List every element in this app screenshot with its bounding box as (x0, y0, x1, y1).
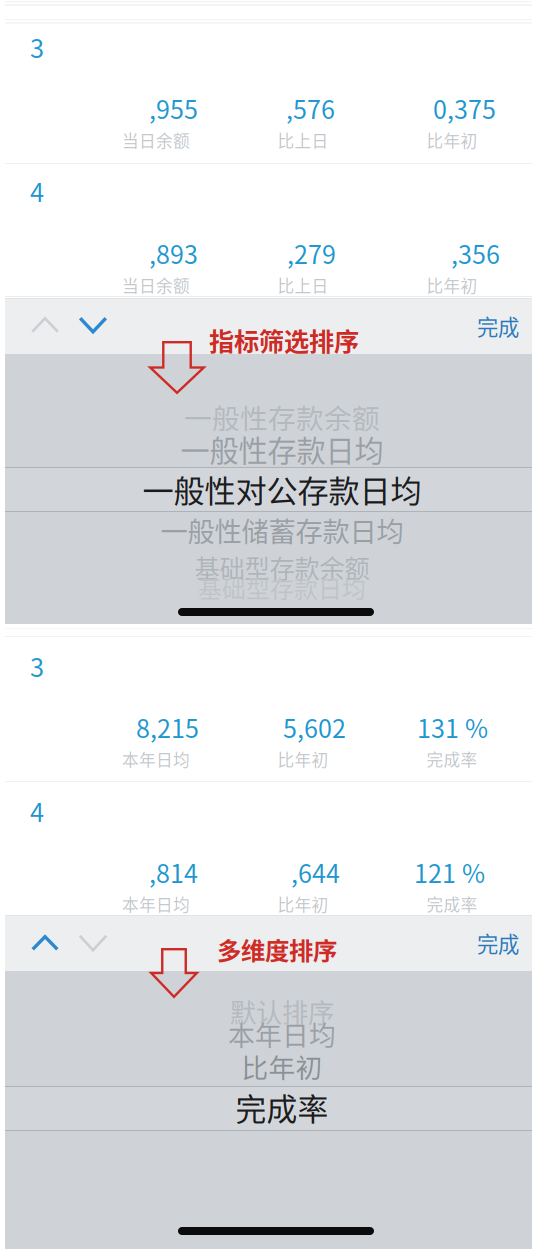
staticText: 比上日 (277, 273, 328, 297)
staticText: 比年初 (277, 747, 328, 771)
staticText: 121 % (414, 854, 485, 890)
staticText: 4 (30, 173, 44, 209)
button[interactable]: 5,602 (196, 712, 346, 742)
staticText: ,279 (287, 235, 336, 271)
staticText: ,893 (149, 235, 198, 271)
staticText: 完成率 (235, 1085, 328, 1129)
button[interactable]: ,893 (48, 238, 198, 268)
staticText: 8,215 (136, 709, 199, 745)
staticText: 一般性储蓄存款日均 (160, 510, 403, 550)
staticText: 3 (30, 29, 44, 65)
button[interactable]: 121 % (335, 857, 485, 887)
staticText: ,814 (149, 854, 198, 890)
staticText: 0,375 (433, 90, 496, 126)
button[interactable]: ,955 (48, 93, 198, 123)
button[interactable]: 一般性存款余额 (62, 402, 502, 432)
button[interactable]: 一般性储蓄存款日均 (62, 515, 502, 545)
staticText: 当日余额 (122, 128, 190, 152)
staticText: 本年日均 (122, 747, 190, 771)
staticText: 当日余额 (122, 273, 190, 297)
staticText: 比年初 (241, 1047, 322, 1085)
button[interactable]: ,644 (190, 857, 340, 887)
staticText: 5,602 (283, 709, 346, 745)
staticText: 多维度排序 (217, 931, 337, 967)
staticText: ,644 (291, 854, 340, 890)
button[interactable]: Scroll down (66, 305, 120, 345)
staticText: 4 (30, 793, 44, 829)
button[interactable]: 0,375 (346, 93, 496, 123)
button[interactable]: ,279 (186, 238, 336, 268)
staticText: 比年初 (426, 273, 477, 297)
button[interactable]: 4 (15, 171, 59, 211)
staticText: ,955 (149, 90, 198, 126)
button[interactable]: 基础型存款日均 (62, 572, 502, 602)
button[interactable]: 3 (15, 646, 59, 686)
staticText: 一般性存款日均 (180, 428, 383, 470)
button[interactable]: 完成率 (62, 1092, 502, 1122)
staticText: 本年日均 (228, 1015, 336, 1053)
button[interactable]: 8,215 (49, 712, 199, 742)
staticText: 一般性存款余额 (184, 397, 380, 437)
button[interactable]: 一般性对公存款日均 (62, 474, 502, 504)
staticText: 比年初 (426, 128, 477, 152)
staticText: 131 % (417, 709, 488, 745)
button[interactable]: 完成 (466, 923, 530, 963)
button[interactable]: Scroll up (18, 923, 72, 963)
button[interactable]: Scroll up (18, 305, 72, 345)
button[interactable]: 一般性存款日均 (62, 434, 502, 464)
button[interactable]: 完成 (466, 306, 530, 346)
staticText: ,576 (286, 90, 335, 126)
button[interactable]: 默认排序 (62, 996, 502, 1026)
staticText: 基础型存款余额 (194, 549, 369, 585)
button[interactable]: Scroll down (66, 923, 120, 963)
button[interactable]: 3 (15, 27, 59, 67)
button[interactable]: 4 (15, 791, 59, 831)
staticText: 默认排序 (230, 992, 334, 1030)
staticText: ,356 (451, 235, 500, 271)
staticText: 比年初 (277, 892, 328, 916)
button[interactable]: ,814 (48, 857, 198, 887)
button[interactable]: 比年初 (62, 1051, 502, 1081)
staticText: 指标筛选排序 (209, 322, 359, 358)
button[interactable]: 本年日均 (62, 1019, 502, 1049)
button[interactable]: 131 % (338, 712, 488, 742)
staticText: 完成 (477, 311, 519, 341)
staticText: 本年日均 (122, 892, 190, 916)
staticText: 完成率 (426, 892, 477, 916)
staticText: 完成率 (426, 747, 477, 771)
staticText: 基础型存款日均 (198, 570, 366, 604)
button[interactable]: ,356 (350, 238, 500, 268)
staticText: 3 (30, 648, 44, 684)
staticText: 一般性对公存款日均 (142, 466, 421, 512)
button[interactable]: 基础型存款余额 (62, 552, 502, 582)
button[interactable]: ,576 (185, 93, 335, 123)
staticText: 完成 (477, 928, 519, 958)
staticText: 比上日 (277, 128, 328, 152)
